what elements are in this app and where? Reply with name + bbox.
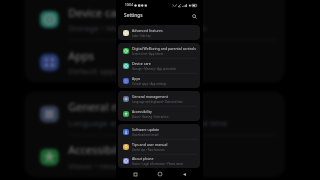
button[interactable]: Device care bbox=[118, 58, 200, 73]
staticText: Default apps • App settings bbox=[68, 65, 178, 77]
staticText: General management bbox=[68, 100, 181, 114]
button[interactable]: Search bbox=[190, 12, 198, 20]
staticText: Language and keyboard • Date and time bbox=[68, 117, 228, 128]
button[interactable]: Device care bbox=[24, 0, 285, 40]
staticText: Accessibility bbox=[132, 109, 152, 114]
staticText: Advanced features bbox=[132, 28, 163, 33]
staticText: 10:04 bbox=[125, 3, 133, 7]
button[interactable]: Apps bbox=[118, 73, 200, 88]
staticText: Tips and user manual bbox=[132, 142, 168, 147]
staticText: Device care bbox=[68, 5, 128, 19]
button[interactable]: Recent apps bbox=[129, 168, 141, 180]
button[interactable]: Digital Wellbeing and parental controls bbox=[118, 43, 200, 58]
button[interactable]: About phone bbox=[118, 154, 200, 168]
button[interactable]: Accessibility bbox=[118, 106, 200, 121]
staticText: Useful tips • New features bbox=[132, 148, 165, 152]
staticText: Vision • Hearing • Interaction bbox=[132, 115, 169, 119]
staticText: Language and keyboard • Date and time bbox=[132, 100, 183, 104]
staticText: Download and install bbox=[132, 133, 159, 137]
button[interactable]: Home bbox=[154, 168, 166, 180]
staticText: Storage • Memory • App protection bbox=[132, 67, 176, 71]
staticText: Status • Legal information • Phone name bbox=[132, 162, 184, 166]
staticText: Accessibility bbox=[68, 143, 131, 157]
staticText: About phone bbox=[132, 156, 154, 161]
button[interactable]: General management bbox=[118, 91, 200, 106]
staticText: General management bbox=[132, 94, 168, 99]
staticText: Default apps • App settings bbox=[132, 82, 167, 86]
staticText: Storage • Memory • App protection bbox=[68, 22, 206, 34]
button[interactable]: Software update bbox=[118, 124, 200, 139]
staticText: Settings bbox=[124, 12, 143, 19]
staticText: Screen time • App timers bbox=[132, 52, 164, 56]
staticText: Device care bbox=[132, 61, 151, 66]
button[interactable]: Accessibility bbox=[24, 134, 285, 177]
staticText: Labs • Side key bbox=[132, 34, 151, 38]
staticText: Vision • Hearing • Interaction bbox=[68, 160, 184, 171]
button[interactable]: Advanced features bbox=[118, 25, 200, 40]
staticText: Apps bbox=[132, 76, 141, 81]
button[interactable]: Apps bbox=[24, 39, 285, 83]
button[interactable]: General management bbox=[24, 91, 285, 134]
staticText: Digital Wellbeing and parental controls bbox=[132, 46, 196, 51]
button[interactable]: Tips and user manual bbox=[118, 139, 200, 154]
button[interactable]: Back bbox=[178, 168, 190, 180]
staticText: Apps bbox=[68, 48, 96, 62]
staticText: Software update bbox=[132, 127, 160, 132]
